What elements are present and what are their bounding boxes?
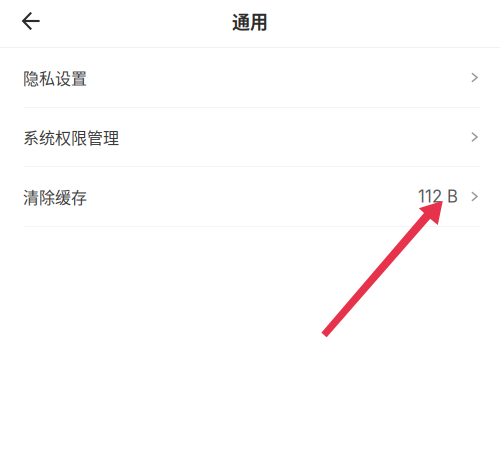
staticText: 隐私设置 bbox=[23, 66, 87, 89]
button[interactable]: 隐私设置 bbox=[0, 48, 500, 107]
button[interactable]: 清除缓存 bbox=[0, 167, 500, 226]
button[interactable]: 系统权限管理 bbox=[0, 108, 500, 166]
button[interactable]: Back bbox=[0, 0, 52, 42]
staticText: 系统权限管理 bbox=[23, 125, 119, 149]
staticText: 通用 bbox=[232, 8, 268, 34]
staticText: 清除缓存 bbox=[23, 185, 87, 208]
staticText: 112 B bbox=[418, 186, 458, 207]
